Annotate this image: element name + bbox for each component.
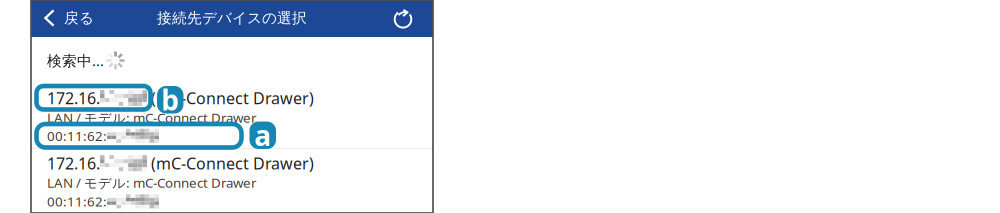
staticText: 00:11:62: [47,127,107,145]
staticText: 接続先デバイスの選択 [157,9,307,27]
button[interactable]: 172.16. [31,149,433,213]
staticText: 戻る [64,9,94,27]
staticText: (mC-Connect Drawer) [147,87,314,109]
staticText: LAN / モデル: mC-Connect Drawer [47,174,257,192]
staticText: (mC-Connect Drawer) [147,153,314,174]
button[interactable]: 172.16. [31,83,433,147]
button[interactable]: 更新 [381,1,425,37]
staticText: b [161,81,179,118]
staticText: a [254,117,271,154]
staticText: 172.16. [47,87,100,109]
staticText: LAN / モデル: mC-Connect Drawer [47,109,257,126]
button[interactable]: 戻る [31,0,104,36]
staticText: 00:11:62: [47,127,107,145]
staticText: 00:11:62: [47,192,107,210]
staticText: 検索中... [47,51,104,70]
staticText: 172.16. [47,153,100,174]
